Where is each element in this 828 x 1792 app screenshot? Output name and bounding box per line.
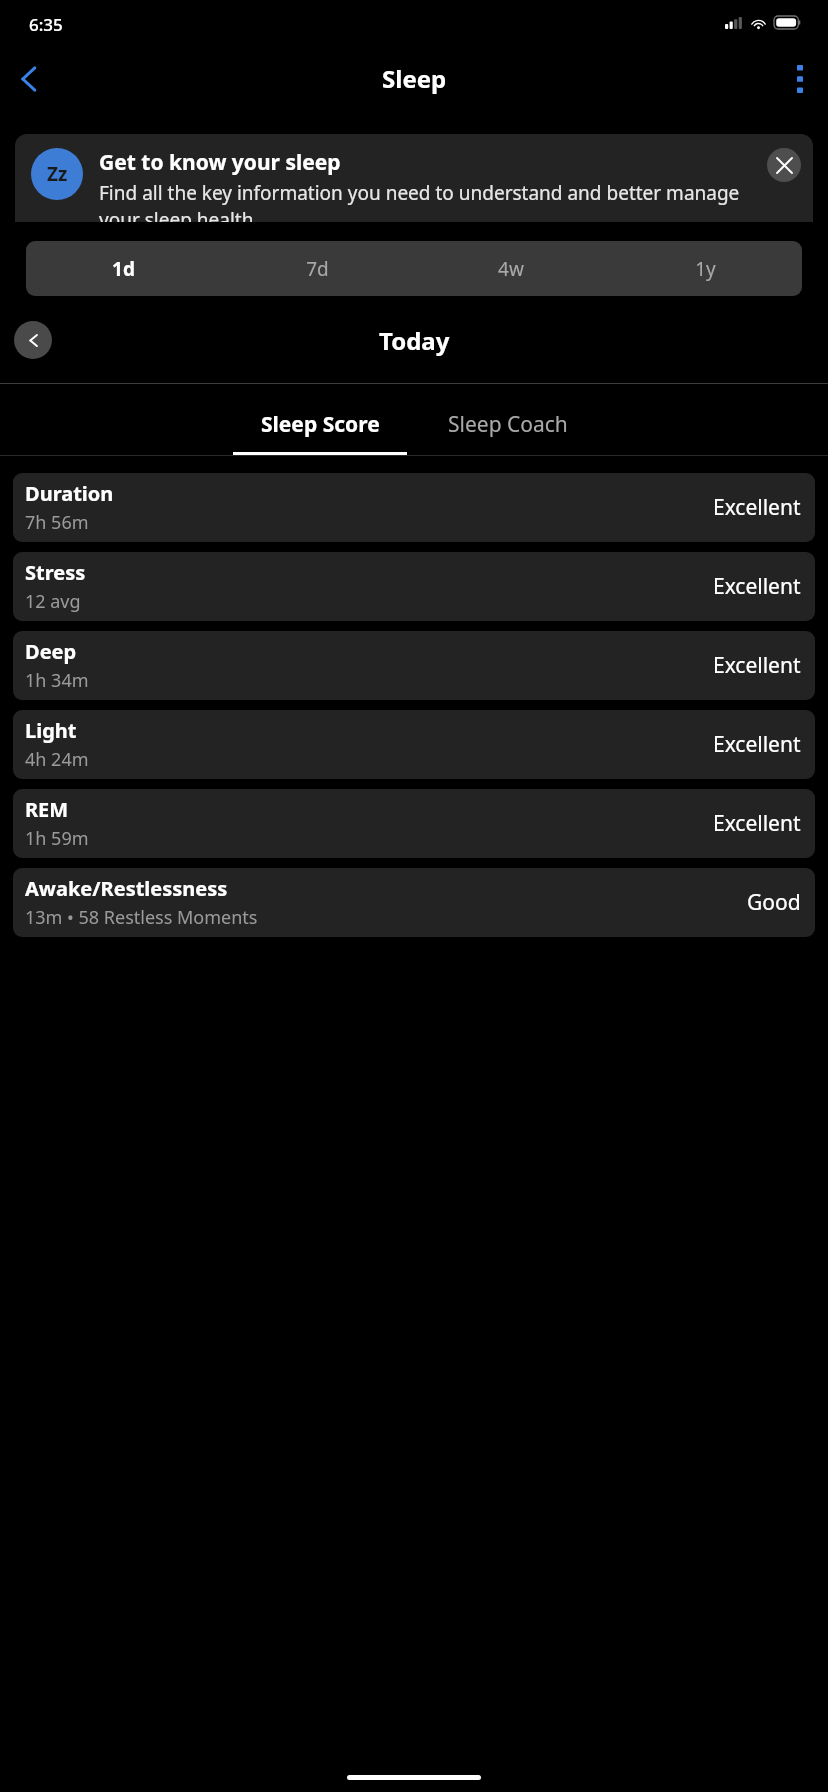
button[interactable]: REM: [13, 789, 815, 858]
staticText: 1d: [112, 256, 135, 282]
staticText: Stress: [25, 559, 86, 586]
button[interactable]: Duration: [13, 473, 815, 542]
button[interactable]: Light: [13, 710, 815, 779]
staticText: Get to know your sleep: [99, 148, 341, 177]
button[interactable]: Awake/Restlessness: [13, 868, 815, 937]
button[interactable]: 1y: [608, 241, 802, 296]
button[interactable]: Sleep Score: [233, 384, 407, 455]
staticText: Excellent: [713, 809, 801, 838]
button[interactable]: More options: [772, 51, 828, 107]
staticText: Today: [379, 324, 450, 357]
button[interactable]: Deep: [13, 631, 815, 700]
staticText: Excellent: [713, 651, 801, 680]
staticText: 1h 34m: [25, 668, 89, 693]
staticText: Excellent: [713, 572, 801, 601]
staticText: Sleep Coach: [448, 410, 568, 439]
staticText: REM: [25, 796, 69, 823]
button[interactable]: 1d: [26, 241, 220, 296]
button[interactable]: Stress: [13, 552, 815, 621]
button[interactable]: Back: [0, 51, 56, 107]
button[interactable]: Sleep Coach: [421, 384, 595, 455]
staticText: Deep: [25, 638, 77, 665]
staticText: 13m • 58 Restless Moments: [25, 905, 258, 930]
staticText: 6:35: [29, 13, 63, 36]
staticText: 12 avg: [25, 589, 81, 614]
staticText: 7d: [306, 256, 329, 282]
button[interactable]: Dismiss: [767, 148, 801, 182]
button[interactable]: Previous day: [14, 321, 52, 359]
staticText: Excellent: [713, 730, 801, 759]
staticText: Awake/Restlessness: [25, 875, 228, 902]
staticText: Sleep: [382, 62, 447, 95]
staticText: 1y: [695, 256, 716, 282]
staticText: 1h 59m: [25, 826, 89, 851]
staticText: 4w: [498, 256, 524, 282]
staticText: Good: [747, 888, 801, 917]
staticText: Duration: [25, 480, 114, 507]
staticText: Sleep Score: [261, 410, 380, 439]
staticText: Zz: [47, 161, 68, 187]
button[interactable]: 4w: [414, 241, 608, 296]
staticText: Light: [25, 717, 77, 744]
staticText: Excellent: [713, 493, 801, 522]
staticText: 7h 56m: [25, 510, 89, 535]
staticText: 4h 24m: [25, 747, 89, 772]
button[interactable]: Zz: [15, 134, 813, 222]
button[interactable]: 7d: [220, 241, 414, 296]
staticText: Find all the key information you need to…: [99, 180, 757, 222]
